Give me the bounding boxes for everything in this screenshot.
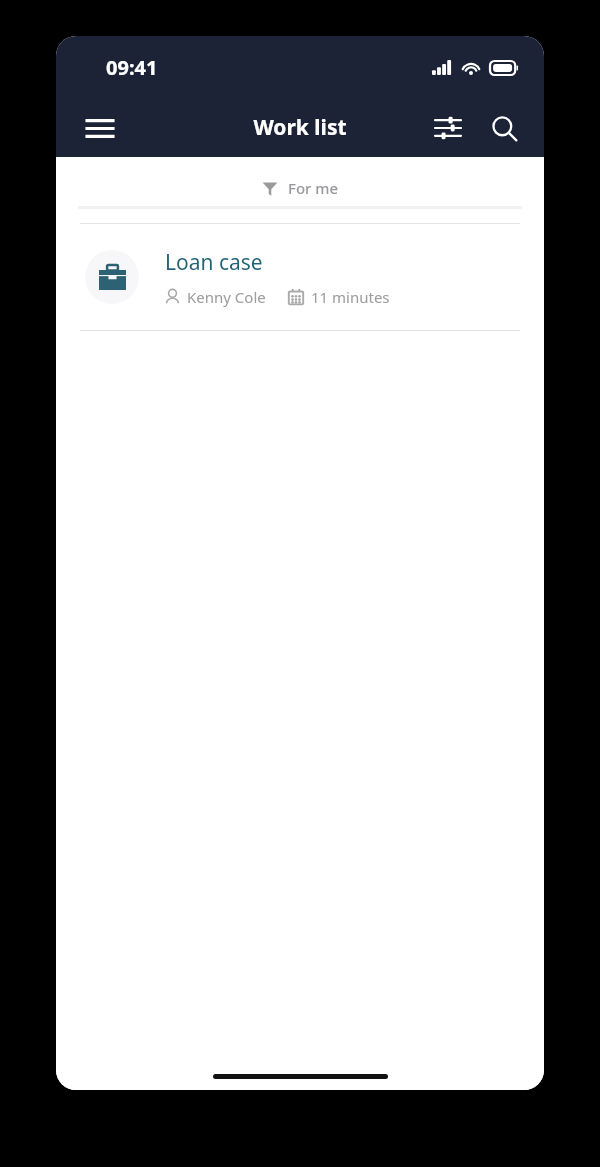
staticText: 11 minutes: [311, 287, 390, 307]
staticText: Kenny Cole: [187, 287, 266, 307]
button[interactable]: Menu: [76, 104, 124, 152]
button[interactable]: Filter settings: [426, 106, 470, 150]
staticText: Loan case: [165, 248, 263, 277]
staticText: Work list: [253, 113, 347, 142]
staticText: 09:41: [106, 54, 158, 81]
button[interactable]: Loan case: [56, 224, 544, 330]
button[interactable]: Search: [482, 106, 526, 150]
button[interactable]: For me: [78, 170, 522, 206]
staticText: For me: [288, 178, 339, 198]
